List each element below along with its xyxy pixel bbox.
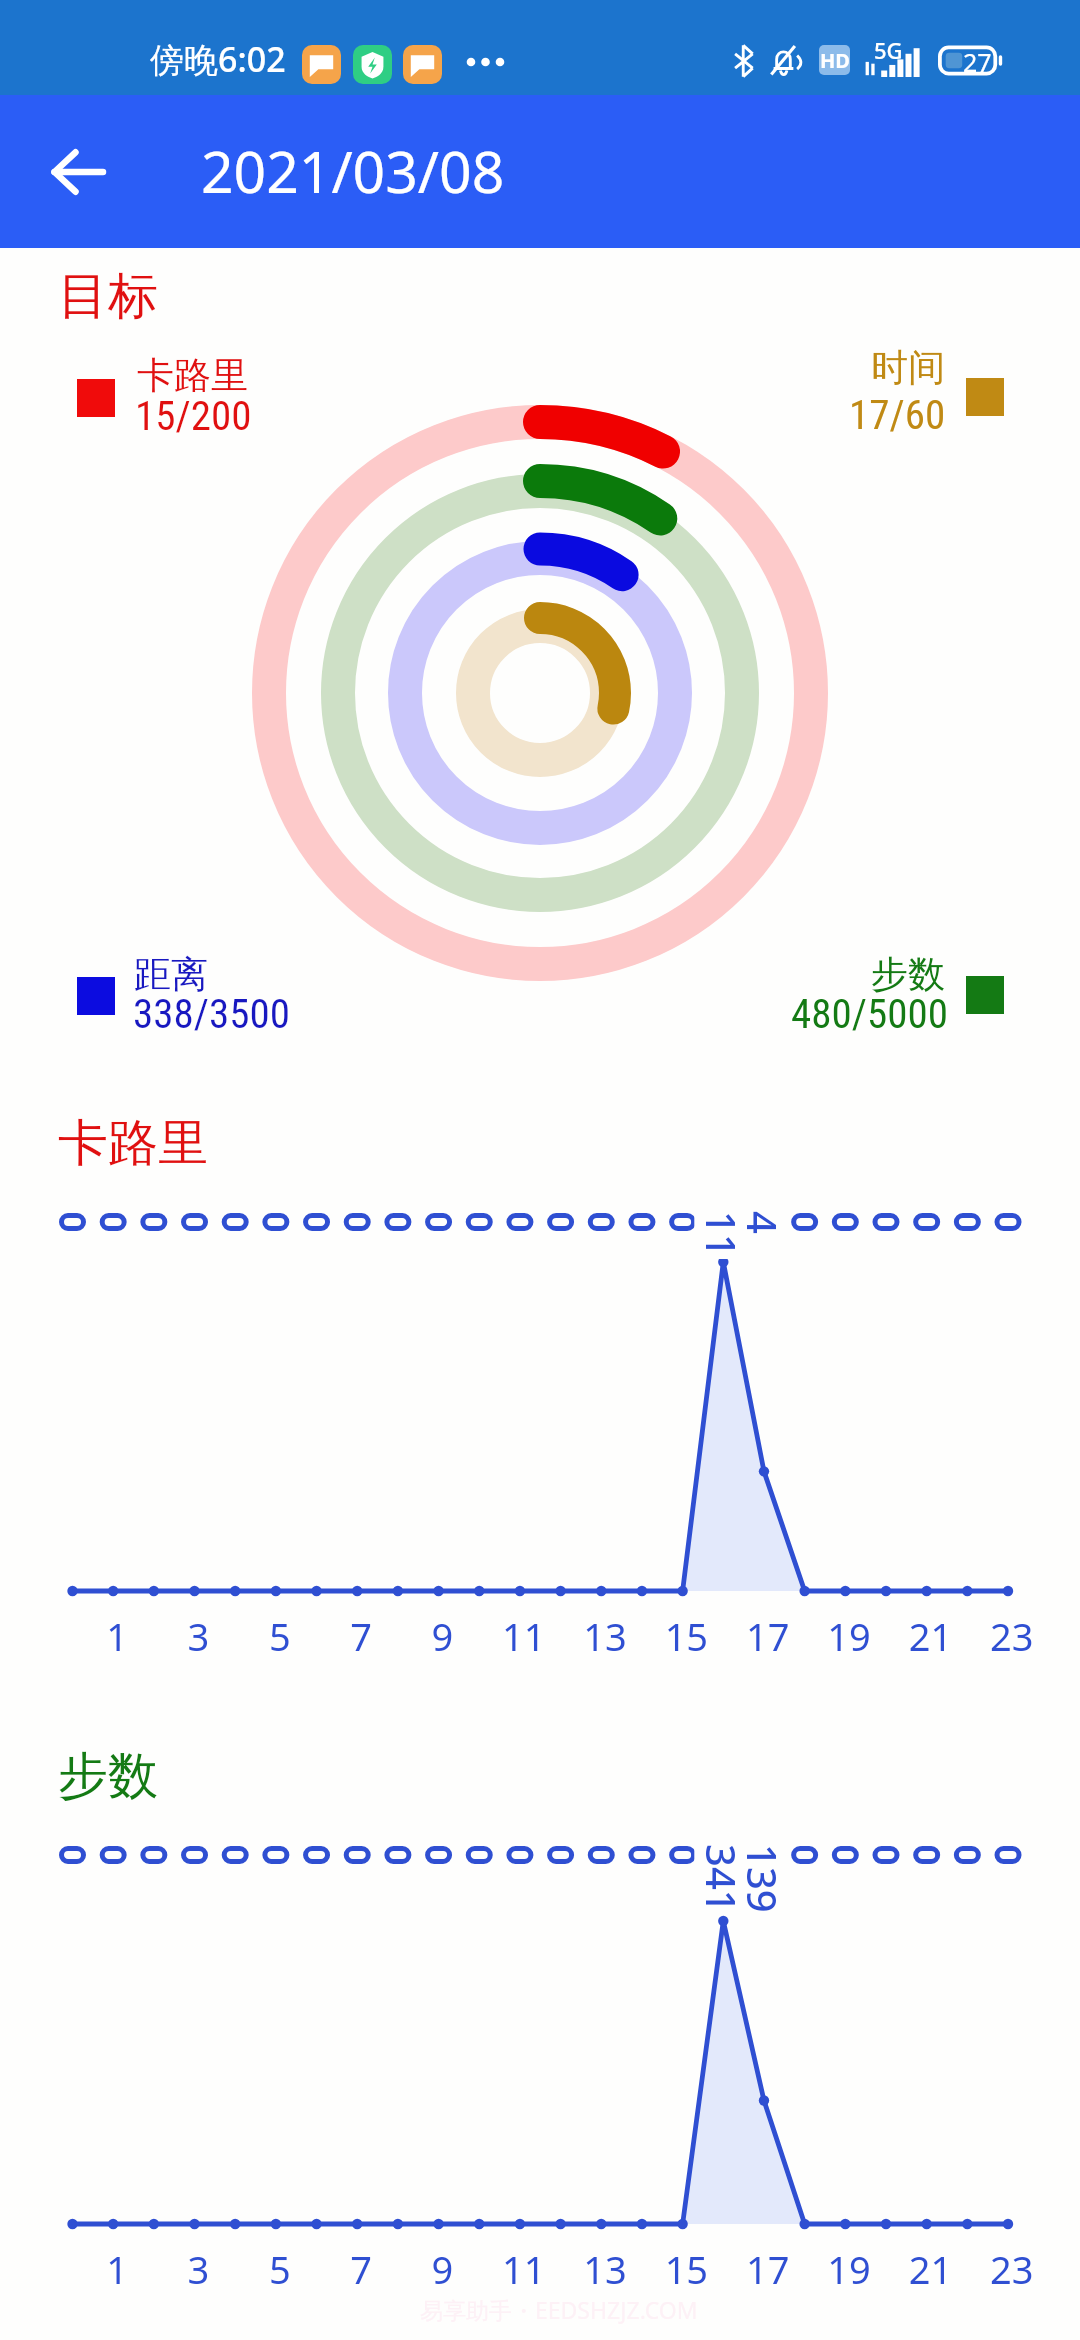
staticText: 5G [874,35,903,65]
staticText: 27 [963,45,992,74]
staticText: 距离 [134,951,208,998]
staticText: 15/200 [135,392,252,440]
staticText: 步数 [58,1745,158,1808]
staticText: 步数 [871,951,945,998]
staticText: HD [820,47,850,74]
staticText: 目标 [58,265,158,328]
staticText: 17/60 [849,391,946,439]
staticText: 卡路里 [58,1112,208,1175]
staticText: 易享助手・EEDSHZJZ.COM [420,2294,698,2325]
staticText: 2021/03/08 [201,132,505,210]
staticText: 338/3500 [133,990,290,1038]
staticText: 时间 [871,344,945,391]
staticText: 傍晚6:02 [150,36,286,82]
button[interactable]: Back [36,130,120,214]
staticText: 卡路里 [137,352,248,399]
staticText: 480/5000 [791,990,948,1038]
